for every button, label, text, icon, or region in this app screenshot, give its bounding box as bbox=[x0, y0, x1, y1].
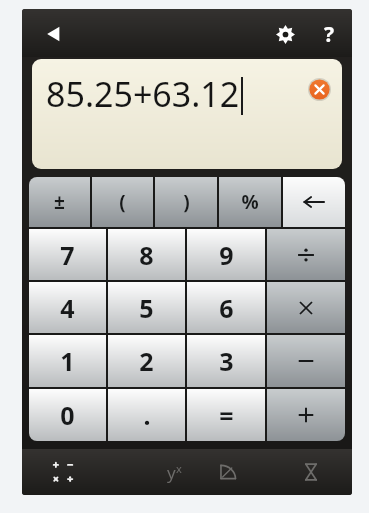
button[interactable]: 6 bbox=[187, 282, 265, 333]
staticText: 0 bbox=[60, 398, 75, 432]
staticText: . bbox=[143, 398, 151, 432]
button[interactable]: Back bbox=[32, 17, 76, 51]
staticText: 85.25+63.12 bbox=[46, 71, 240, 117]
staticText: 4 bbox=[60, 291, 75, 325]
button[interactable]: ) bbox=[155, 177, 217, 227]
staticText: 2 bbox=[139, 344, 154, 378]
button[interactable]: 8 bbox=[108, 229, 185, 280]
staticText: ) bbox=[183, 189, 190, 215]
button[interactable]: 1 bbox=[29, 335, 106, 387]
staticText: 6 bbox=[219, 291, 234, 325]
button[interactable]: Basic operations bbox=[22, 449, 104, 495]
button[interactable]: Geometry bbox=[186, 449, 269, 495]
button[interactable]: Settings bbox=[266, 18, 304, 50]
staticText: 7 bbox=[60, 238, 75, 272]
button[interactable]: 3 bbox=[187, 335, 265, 387]
button[interactable]: 2 bbox=[108, 335, 185, 387]
button[interactable]: 9 bbox=[187, 229, 265, 280]
staticText: x bbox=[176, 461, 182, 476]
button[interactable]: History bbox=[269, 449, 352, 495]
staticText: y bbox=[167, 461, 176, 484]
staticText: 3 bbox=[219, 344, 234, 378]
button[interactable]: Backspace bbox=[283, 177, 345, 227]
staticText: = bbox=[219, 398, 234, 432]
button[interactable]: 85.25+63.12 bbox=[32, 59, 342, 169]
button[interactable]: % bbox=[219, 177, 281, 227]
staticText: ( bbox=[119, 189, 126, 215]
staticText: ± bbox=[54, 189, 65, 215]
button[interactable]: Clear bbox=[306, 76, 332, 102]
button[interactable]: 5 bbox=[108, 282, 185, 333]
button[interactable]: ± bbox=[29, 177, 90, 227]
staticText: 9 bbox=[219, 238, 234, 272]
button[interactable]: 4 bbox=[29, 282, 106, 333]
button[interactable]: 0 bbox=[29, 389, 106, 441]
button[interactable]: ( bbox=[92, 177, 153, 227]
staticText: 8 bbox=[139, 238, 154, 272]
button[interactable]: 7 bbox=[29, 229, 106, 280]
button[interactable]: . bbox=[108, 389, 185, 441]
staticText: 5 bbox=[139, 291, 154, 325]
button[interactable]: Powers bbox=[104, 449, 186, 495]
button[interactable]: Divide bbox=[267, 229, 345, 280]
button[interactable]: Multiply bbox=[267, 282, 345, 333]
button[interactable]: Plus bbox=[267, 389, 345, 441]
button[interactable]: = bbox=[187, 389, 265, 441]
staticText: 1 bbox=[60, 344, 75, 378]
button[interactable]: Help bbox=[312, 18, 346, 50]
staticText: % bbox=[241, 189, 259, 215]
button[interactable]: Minus bbox=[267, 335, 345, 387]
staticText: ? bbox=[324, 20, 335, 49]
